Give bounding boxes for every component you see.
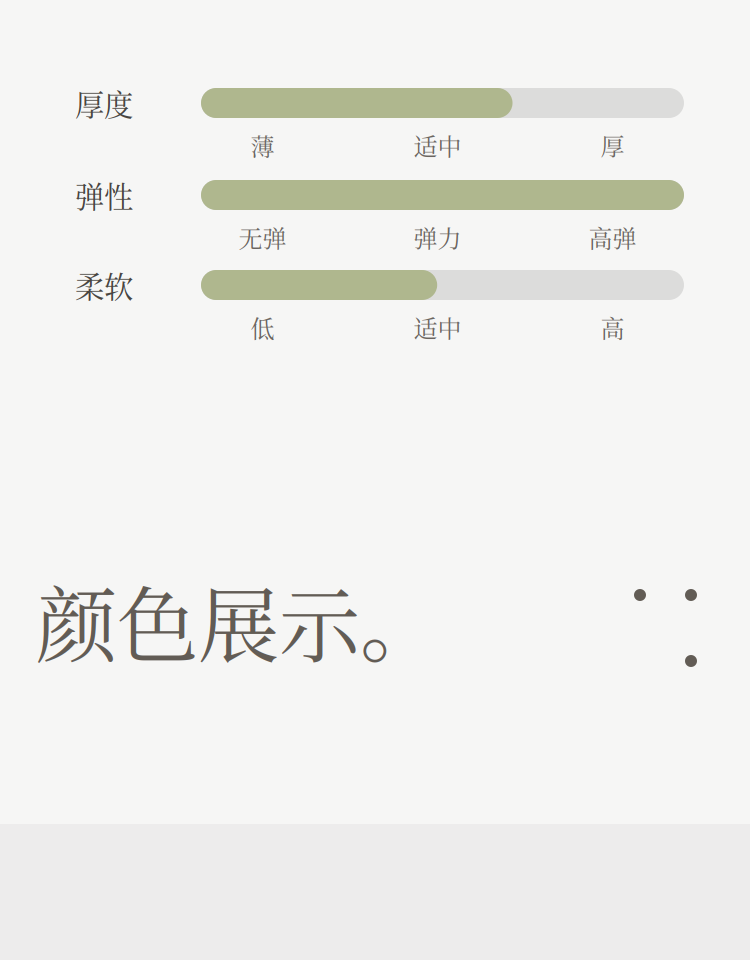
staticText: 高 [600, 310, 624, 344]
button[interactable]: 柔软 [75, 270, 705, 344]
staticText: 弹性 [75, 174, 133, 216]
button[interactable]: 厚度 [75, 88, 705, 162]
staticText: 薄 [250, 128, 274, 162]
staticText: 厚 [600, 128, 624, 162]
staticText: 适中 [413, 310, 461, 344]
staticText: 柔软 [75, 264, 133, 306]
staticText: 高弹 [588, 220, 636, 254]
button[interactable]: 弹性 [75, 180, 705, 254]
staticText: 低 [250, 310, 274, 344]
staticText: 弹力 [413, 220, 461, 254]
staticText: 无弹 [238, 220, 286, 254]
staticText: 颜色展示。 [36, 562, 441, 679]
staticText: 厚度 [75, 82, 133, 124]
staticText: 适中 [413, 128, 461, 162]
